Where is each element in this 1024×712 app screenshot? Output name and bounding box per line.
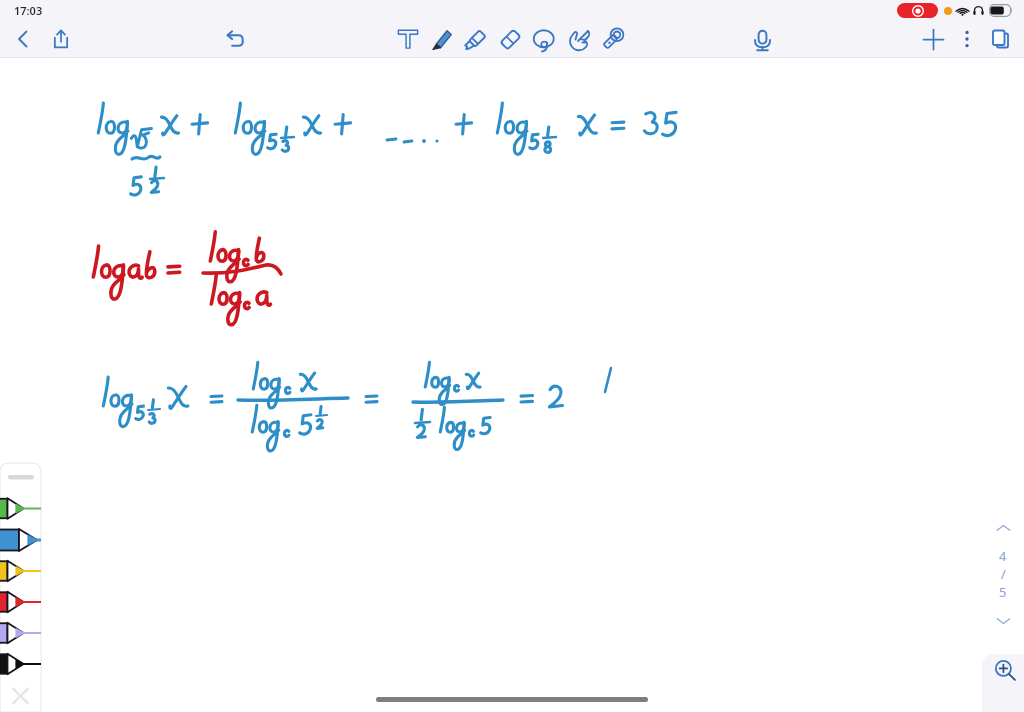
button[interactable]: Pen colour xyxy=(0,469,41,500)
button[interactable]: More options xyxy=(950,22,984,56)
button[interactable]: Eraser xyxy=(493,22,527,56)
button[interactable]: Close palette xyxy=(0,672,30,702)
button[interactable]: Undo xyxy=(218,22,252,56)
staticText: / xyxy=(1001,565,1006,583)
button[interactable]: Laser pointer xyxy=(595,22,629,56)
button[interactable]: Highlighter xyxy=(459,22,493,56)
button[interactable]: Microphone xyxy=(745,22,779,56)
button[interactable]: Pen colour xyxy=(0,562,41,593)
button[interactable]: Pen colour xyxy=(0,500,41,531)
staticText: 5 xyxy=(999,583,1007,601)
button[interactable]: Previous page xyxy=(991,516,1015,540)
button[interactable]: Next page xyxy=(991,608,1015,632)
button[interactable]: Pen colour xyxy=(0,624,41,655)
button[interactable]: Recording xyxy=(897,3,938,18)
button[interactable]: Zoom in xyxy=(982,654,1024,712)
button[interactable]: Share xyxy=(44,22,78,56)
button[interactable]: Add xyxy=(916,22,950,56)
button[interactable]: 4 xyxy=(991,547,1015,601)
button[interactable]: Hand xyxy=(561,22,595,56)
button[interactable]: Pen colour xyxy=(0,531,41,562)
button[interactable]: Pen colour xyxy=(0,593,41,624)
button[interactable]: Lasso xyxy=(527,22,561,56)
button[interactable]: Pages xyxy=(984,22,1018,56)
button[interactable]: Back xyxy=(6,22,40,56)
staticText: 17:03 xyxy=(14,3,43,18)
staticText: 4 xyxy=(999,547,1007,565)
button[interactable]: Text tool xyxy=(391,22,425,56)
button[interactable]: Pen xyxy=(425,22,459,56)
